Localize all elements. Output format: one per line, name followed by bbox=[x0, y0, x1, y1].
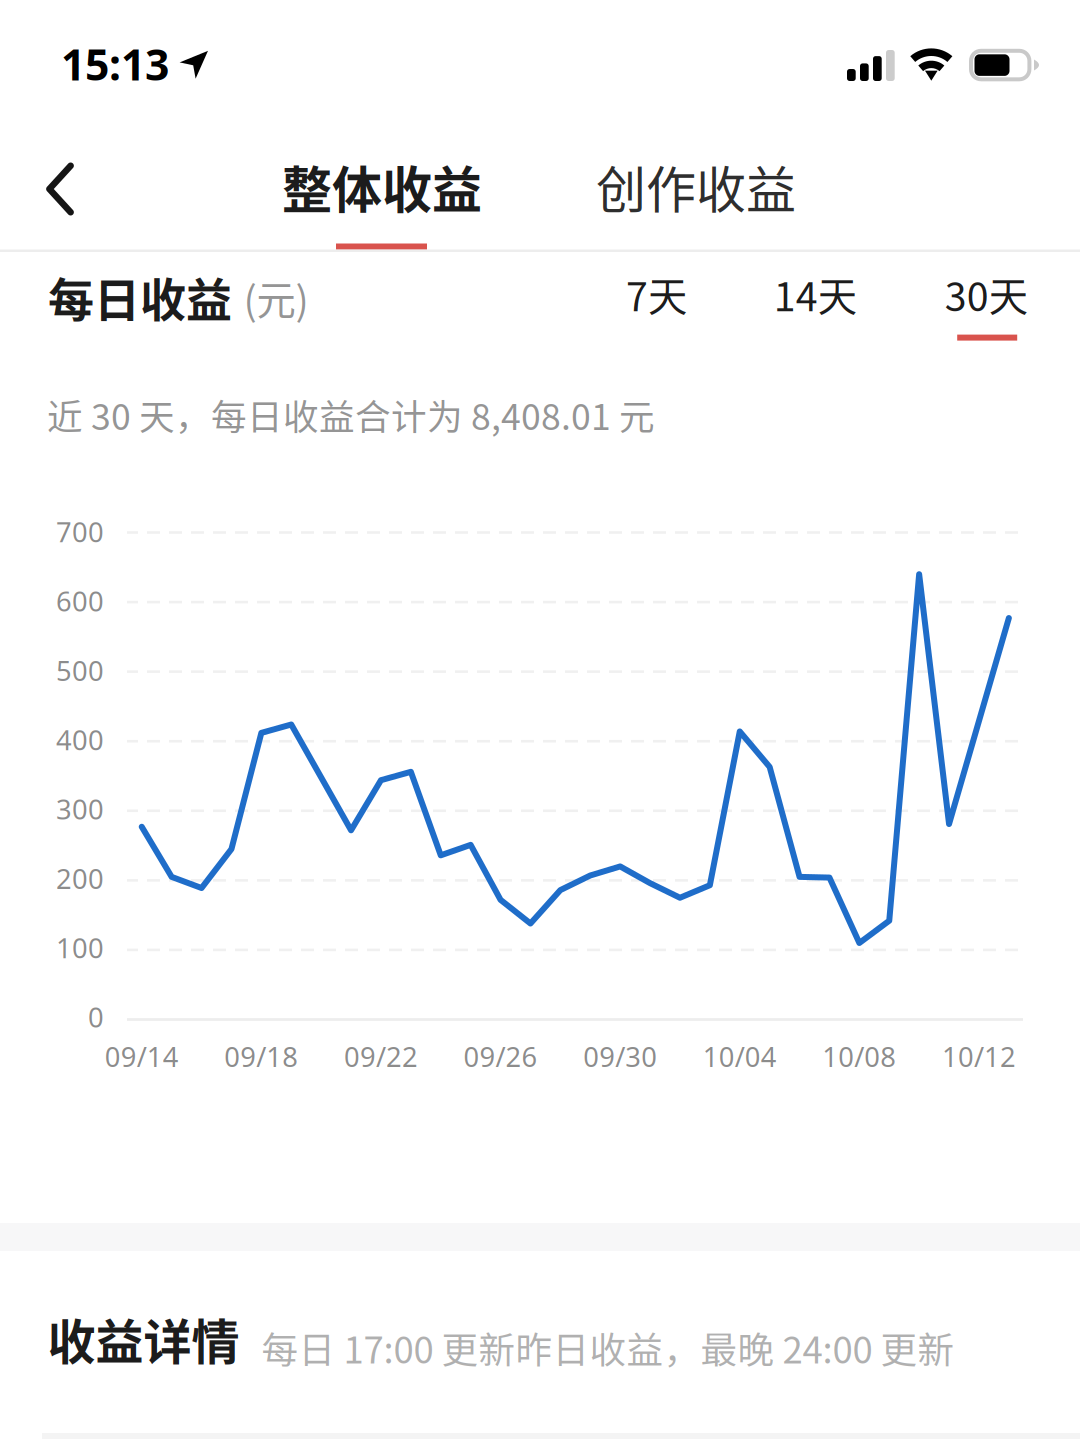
staticText: 整体收益 bbox=[282, 150, 482, 223]
staticText: 500 bbox=[56, 652, 104, 689]
button[interactable]: 7天 bbox=[586, 254, 726, 342]
staticText: 7天 bbox=[626, 266, 687, 323]
button[interactable]: 14天 bbox=[745, 254, 885, 342]
staticText: 700 bbox=[56, 513, 104, 550]
staticText: 每日 17:00 更新昨日收益，最晚 24:00 更新 bbox=[261, 1321, 954, 1374]
button[interactable]: 返回 bbox=[12, 139, 108, 239]
staticText: 400 bbox=[56, 721, 104, 758]
staticText: 600 bbox=[56, 582, 104, 620]
staticText: 09/22 bbox=[344, 1038, 418, 1075]
staticText: 09/30 bbox=[583, 1038, 657, 1075]
button[interactable]: 创作收益 bbox=[586, 150, 806, 252]
staticText: 每日收益 bbox=[48, 263, 232, 330]
staticText: 09/26 bbox=[463, 1038, 537, 1075]
button[interactable]: 整体收益 bbox=[272, 150, 492, 252]
staticText: 收益详情 bbox=[47, 1304, 239, 1373]
staticText: 200 bbox=[56, 860, 104, 897]
staticText: 15:13 bbox=[61, 35, 169, 93]
staticText: 09/14 bbox=[105, 1038, 179, 1075]
button[interactable]: 30天 bbox=[916, 254, 1056, 342]
staticText: 100 bbox=[56, 929, 104, 966]
staticText: 近 30 天，每日收益合计为 8,408.01 元 bbox=[47, 389, 655, 440]
staticText: 14天 bbox=[774, 266, 857, 323]
staticText: 10/12 bbox=[942, 1038, 1016, 1075]
staticText: 30天 bbox=[945, 266, 1028, 323]
staticText: 300 bbox=[56, 790, 104, 828]
staticText: (元) bbox=[243, 269, 308, 326]
staticText: 10/04 bbox=[703, 1038, 777, 1075]
staticText: 09/18 bbox=[224, 1038, 298, 1075]
staticText: 创作收益 bbox=[596, 150, 796, 223]
staticText: 10/08 bbox=[822, 1038, 896, 1075]
staticText: 0 bbox=[88, 998, 104, 1036]
